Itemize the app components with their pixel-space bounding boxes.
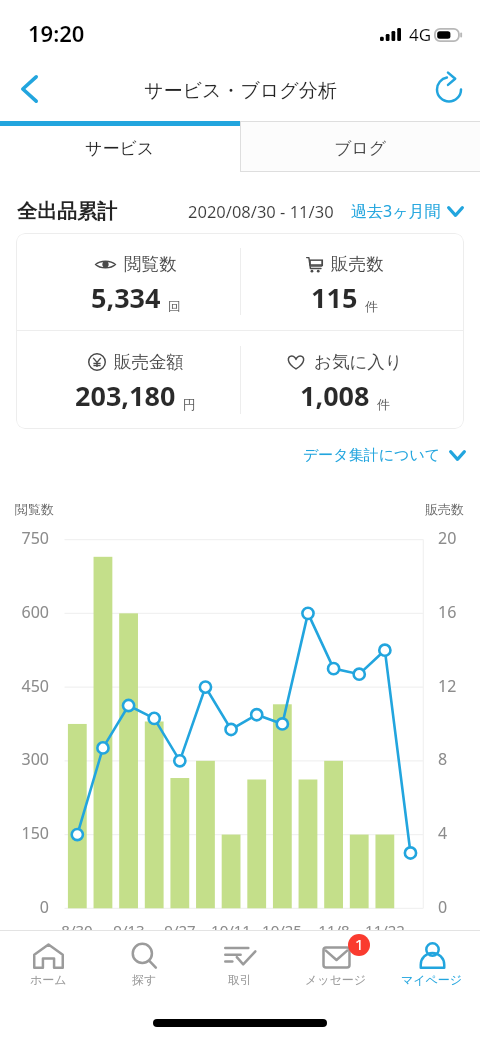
staticText: 回 [168, 298, 181, 314]
staticText: 過去3ヶ月間 [351, 200, 441, 222]
staticText: 閲覧数 [124, 253, 177, 275]
button[interactable]: ブログ [240, 121, 480, 172]
button[interactable]: お気に入り [240, 331, 449, 429]
staticText: 9/13 [103, 920, 155, 940]
staticText: サービス [85, 138, 155, 159]
staticText: 115 [311, 279, 358, 316]
button[interactable]: 過去3ヶ月間 [351, 200, 464, 222]
staticText: 20 [438, 527, 457, 549]
staticText: 8 [438, 748, 448, 770]
staticText: 0 [438, 896, 448, 918]
button[interactable]: 探す [96, 931, 192, 991]
button[interactable]: Refresh [424, 64, 474, 114]
staticText: 販売金額 [114, 351, 184, 373]
button[interactable]: 閲覧数 [31, 233, 240, 330]
staticText: 600 [8, 601, 49, 623]
staticText: 1 [355, 934, 364, 954]
staticText: 円 [183, 396, 196, 412]
staticText: 4 [438, 822, 448, 844]
staticText: 11/22 [359, 920, 411, 940]
staticText: 全出品累計 [17, 199, 117, 224]
staticText: 16 [438, 601, 457, 623]
button[interactable]: 販売数 [240, 233, 449, 330]
staticText: サービス・ブログ分析 [144, 79, 337, 103]
staticText: 探す [132, 972, 157, 987]
button[interactable]: 1 [288, 931, 384, 991]
staticText: 450 [8, 675, 49, 697]
button[interactable]: 取引 [192, 931, 288, 991]
staticText: 件 [377, 396, 390, 412]
button[interactable]: マイページ [384, 931, 480, 991]
staticText: 閲覧数 [15, 501, 54, 517]
staticText: ブログ [334, 138, 387, 159]
staticText: お気に入り [314, 351, 403, 373]
button[interactable]: Back [4, 64, 54, 114]
staticText: 10/11 [205, 920, 257, 940]
staticText: 1,008 [300, 377, 370, 414]
staticText: 0 [8, 896, 49, 918]
staticText: 販売数 [425, 501, 464, 517]
staticText: 750 [8, 527, 49, 549]
staticText: 19:20 [28, 18, 85, 48]
button[interactable]: データ集計について [303, 446, 466, 465]
staticText: ホーム [30, 972, 67, 987]
staticText: マイページ [401, 972, 463, 987]
button[interactable]: サービス [0, 121, 240, 172]
staticText: データ集計について [303, 446, 441, 465]
staticText: 4G [409, 23, 432, 46]
staticText: 203,180 [75, 377, 176, 414]
staticText: 12 [438, 675, 457, 697]
staticText: 5,334 [91, 279, 161, 316]
staticText: 8/30 [51, 920, 103, 940]
button[interactable]: 販売金額 [31, 331, 240, 429]
staticText: 販売数 [331, 253, 384, 275]
button[interactable]: ホーム [0, 931, 96, 991]
staticText: 150 [8, 822, 49, 844]
staticText: 2020/08/30 - 11/30 [188, 200, 334, 222]
staticText: メッセージ [305, 972, 367, 987]
staticText: 9/27 [154, 920, 206, 940]
staticText: 11/8 [308, 920, 360, 940]
staticText: 取引 [228, 972, 252, 987]
staticText: 10/25 [256, 920, 308, 940]
staticText: 件 [365, 298, 378, 314]
staticText: 300 [8, 748, 49, 770]
